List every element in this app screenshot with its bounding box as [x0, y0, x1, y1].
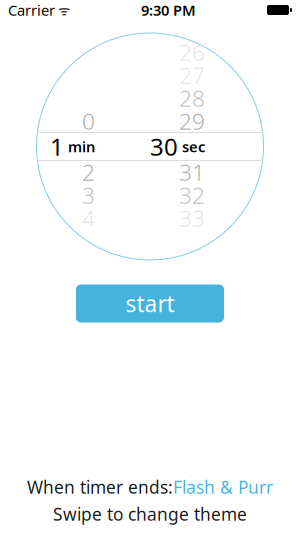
staticText: 4	[82, 203, 95, 233]
staticText: 27	[179, 60, 205, 90]
staticText: 31	[179, 157, 205, 187]
staticText: Carrier	[8, 0, 55, 20]
staticText: 32	[179, 180, 205, 210]
staticText: When timer ends:	[27, 475, 173, 498]
staticText: start	[125, 288, 174, 318]
staticText: 2	[82, 157, 95, 187]
staticText: ᯤ	[55, 1, 70, 19]
staticText: Swipe to change theme	[53, 502, 247, 525]
staticText: 3	[82, 180, 95, 210]
staticText: 29	[179, 106, 205, 136]
staticText: 30	[150, 131, 178, 162]
staticText: min	[68, 137, 95, 156]
staticText: sec	[182, 137, 205, 156]
staticText: 28	[179, 83, 205, 113]
staticText: Flash & Purr	[173, 475, 273, 498]
staticText: 26	[179, 37, 205, 67]
button[interactable]: start	[76, 284, 224, 322]
staticText: 33	[179, 203, 205, 233]
staticText: 0	[82, 106, 95, 136]
staticText: 1	[50, 131, 64, 162]
staticText: 9:30 PM	[141, 0, 196, 20]
button[interactable]: When timer ends:	[27, 475, 273, 498]
